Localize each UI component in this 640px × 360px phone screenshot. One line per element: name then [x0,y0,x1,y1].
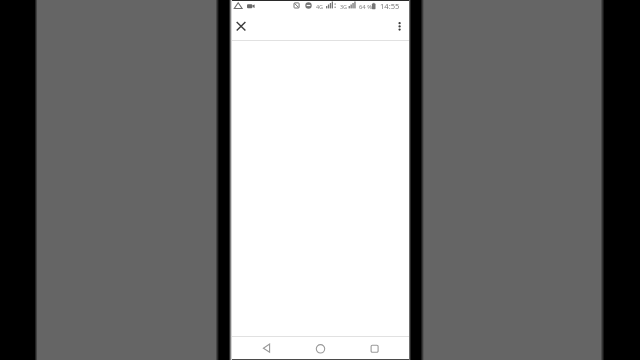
staticText: 64 % [359,3,372,11]
staticText: 3G [340,3,348,10]
button[interactable] [392,18,408,34]
staticText: 4G [316,3,324,10]
button[interactable] [233,18,249,34]
button[interactable] [364,338,385,359]
button[interactable] [256,338,277,359]
staticText: 14:55 [380,1,400,11]
button[interactable] [310,338,331,359]
